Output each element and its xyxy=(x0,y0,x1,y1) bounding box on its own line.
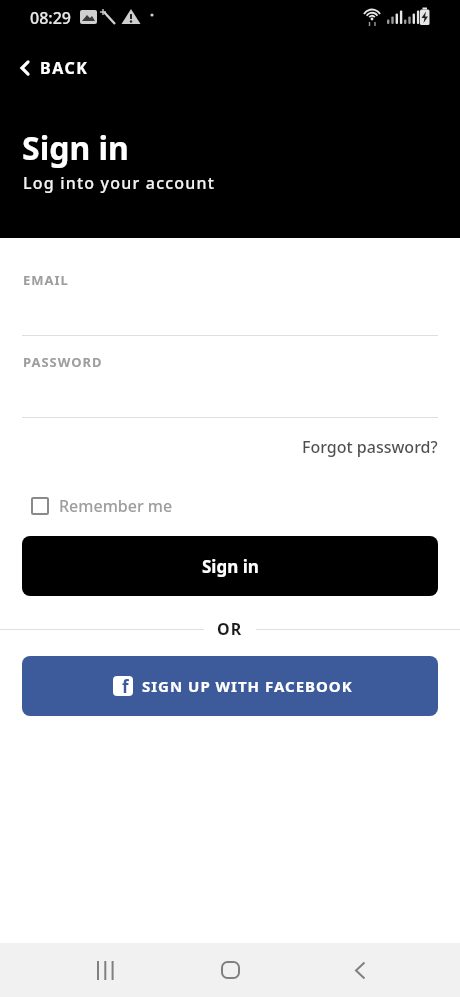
staticText: f xyxy=(122,676,129,695)
staticText: Sign in xyxy=(22,126,129,170)
staticText: EMAIL xyxy=(23,271,69,289)
staticText: Remember me xyxy=(59,495,173,517)
button[interactable]: Sign in xyxy=(22,536,438,596)
button[interactable]: Remember me xyxy=(31,495,173,517)
staticText: OR xyxy=(217,618,243,640)
button[interactable] xyxy=(81,946,129,994)
button[interactable] xyxy=(206,946,254,994)
staticText: 08:29 xyxy=(30,7,71,29)
staticText: BACK xyxy=(40,57,89,79)
staticText: Log into your account xyxy=(23,172,216,194)
button[interactable]: Forgot password? xyxy=(302,436,438,458)
staticText: SIGN UP WITH FACEBOOK xyxy=(142,676,353,696)
staticText: Sign in xyxy=(202,555,259,578)
button[interactable] xyxy=(336,946,384,994)
button[interactable]: BACK xyxy=(14,53,93,83)
staticText: PASSWORD xyxy=(23,353,103,371)
button[interactable]: f xyxy=(22,656,438,716)
